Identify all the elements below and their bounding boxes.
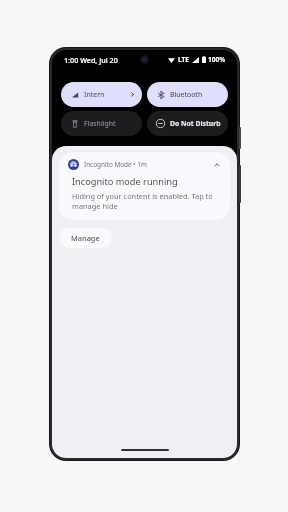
staticText: Incognito mode running (72, 175, 178, 188)
button[interactable]: Flashlight (61, 111, 142, 136)
button[interactable]: Incognito Mode • 1m (59, 152, 230, 220)
staticText: LTE (178, 55, 190, 64)
button[interactable]: Manage (59, 228, 112, 248)
button[interactable]: Do Not Disturb (147, 111, 228, 136)
staticText: Hiding of your content is enabled. Tap t… (72, 191, 222, 211)
button[interactable]: Bluetooth (147, 82, 228, 107)
button[interactable]: Collapse notification (211, 159, 222, 170)
staticText: Do Not Disturb (170, 119, 221, 128)
button[interactable]: Internet (61, 82, 142, 107)
staticText: Bluetooth (170, 90, 203, 99)
staticText: Manage (71, 233, 100, 243)
staticText: Internet (84, 90, 107, 99)
staticText: Incognito Mode • 1m (84, 160, 147, 169)
staticText: 100% (208, 55, 226, 64)
staticText: Flashlight (84, 119, 116, 128)
staticText: 1:00 Wed, Jul 20 (64, 55, 118, 65)
